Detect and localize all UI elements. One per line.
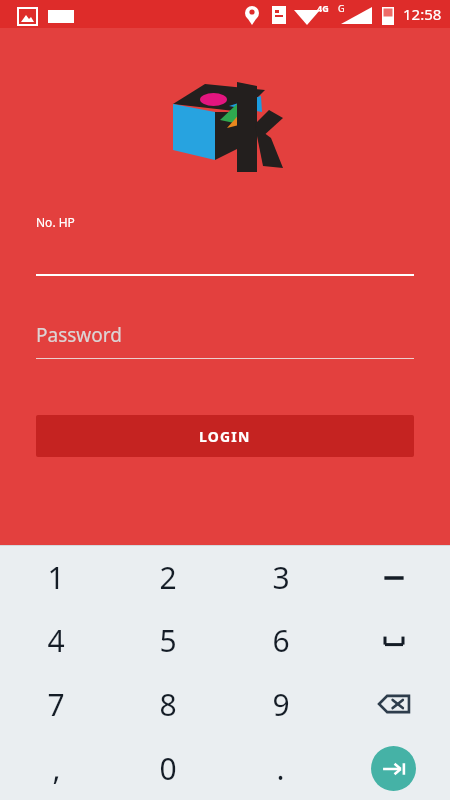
button[interactable]: 0 — [112, 736, 224, 800]
button[interactable]: 3 — [224, 546, 337, 609]
staticText: 1 — [47, 557, 65, 598]
staticText: 4G — [317, 2, 329, 14]
other: Backspace — [377, 687, 411, 721]
button[interactable]: 9 — [224, 672, 337, 736]
button[interactable]: 4 — [0, 609, 112, 672]
staticText: 6 — [272, 620, 290, 661]
button[interactable]: 1 — [0, 546, 112, 609]
other: Space — [379, 626, 409, 656]
button[interactable]: Enter — [337, 736, 450, 800]
staticText: G — [338, 2, 345, 14]
button[interactable]: 5 — [112, 609, 224, 672]
button[interactable]: Minus — [337, 546, 450, 609]
other: Minus — [379, 563, 409, 593]
staticText: 5 — [159, 620, 177, 661]
staticText: LOGIN — [199, 427, 251, 446]
staticText: . — [276, 748, 285, 789]
button[interactable]: 2 — [112, 546, 224, 609]
staticText: 7 — [47, 684, 65, 725]
staticText: 9 — [272, 684, 290, 725]
staticText: , — [52, 748, 61, 789]
staticText: 0 — [159, 748, 177, 789]
staticText: 2 — [159, 557, 177, 598]
staticText: No. HP — [36, 214, 75, 230]
button[interactable]: LOGIN — [36, 415, 414, 457]
button[interactable]: 6 — [224, 609, 337, 672]
staticText: 4 — [47, 620, 65, 661]
button[interactable]: Password — [36, 322, 414, 359]
staticText: 12:58 — [403, 4, 442, 24]
button[interactable]: , — [0, 736, 112, 800]
button[interactable]: Backspace — [337, 672, 450, 736]
button[interactable]: No. HP — [36, 214, 414, 276]
staticText: Password — [36, 322, 122, 348]
other: Enter — [371, 746, 416, 791]
staticText: 8 — [159, 684, 177, 725]
button[interactable]: Space — [337, 609, 450, 672]
button[interactable]: 8 — [112, 672, 224, 736]
button[interactable]: 7 — [0, 672, 112, 736]
staticText: 3 — [272, 557, 290, 598]
button[interactable]: . — [224, 736, 337, 800]
